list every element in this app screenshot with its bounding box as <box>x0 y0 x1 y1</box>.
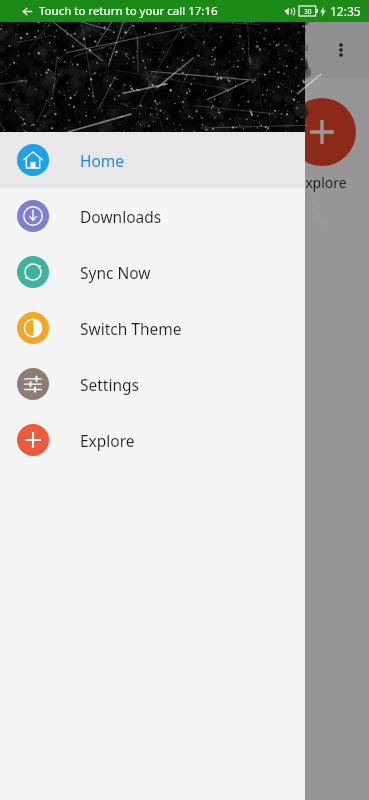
staticText: 30 <box>304 7 312 16</box>
button[interactable]: Sync Now <box>0 244 305 300</box>
staticText: Home <box>80 150 125 171</box>
button[interactable]: More options <box>321 30 361 70</box>
staticText: Downloads <box>80 206 162 227</box>
staticText: 12:35 <box>330 3 361 19</box>
staticText: Explore <box>297 173 347 192</box>
button[interactable]: Downloads <box>0 188 305 244</box>
staticText: Sync Now <box>80 262 151 283</box>
staticText: Switch Theme <box>80 318 182 339</box>
button[interactable]: Settings <box>0 356 305 412</box>
staticText: Touch to return to your call 17:16 <box>39 3 218 19</box>
staticText: Explore <box>80 430 135 451</box>
button[interactable]: Switch Theme <box>0 300 305 356</box>
staticText: Settings <box>80 374 139 395</box>
button[interactable]: Explore <box>288 98 356 166</box>
button[interactable]: Explore <box>0 412 305 468</box>
button[interactable]: Home <box>0 132 305 188</box>
